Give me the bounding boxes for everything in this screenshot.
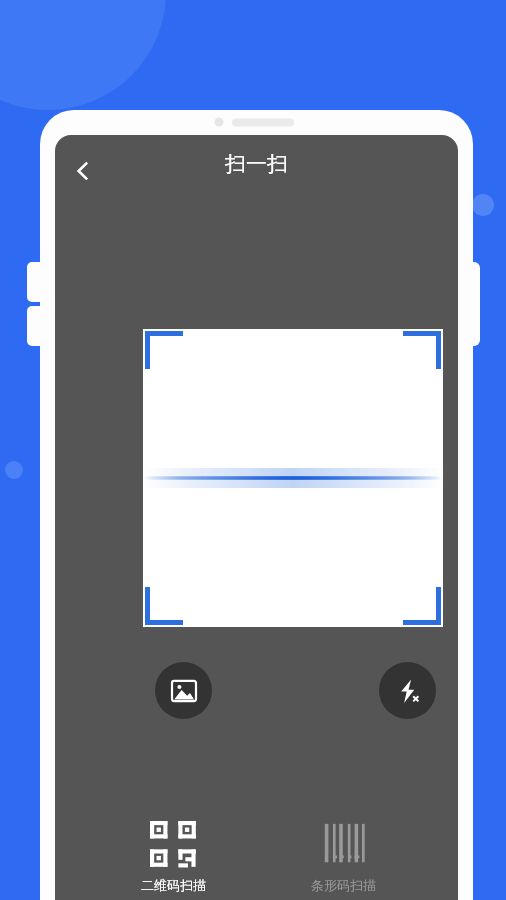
button[interactable]: 条形码扫描 (301, 817, 386, 897)
staticText: 扫一扫 (225, 151, 288, 177)
button[interactable]: Toggle flashlight (379, 662, 436, 719)
button[interactable]: Choose image from gallery (155, 662, 212, 719)
staticText: 二维码扫描 (141, 877, 206, 893)
button[interactable]: 二维码扫描 (131, 817, 216, 897)
button[interactable]: Back (59, 147, 107, 195)
staticText: 条形码扫描 (311, 877, 376, 893)
